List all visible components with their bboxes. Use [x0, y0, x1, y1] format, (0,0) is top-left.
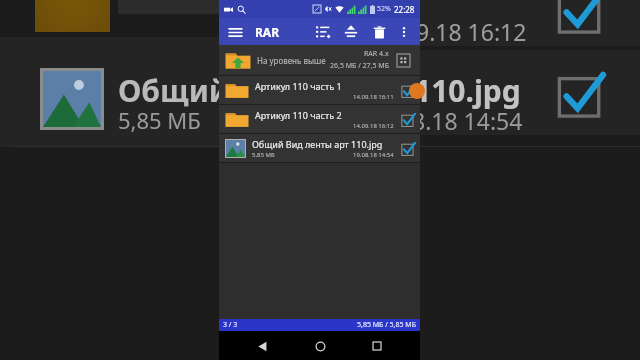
- staticText: 8.18 14:54: [412, 105, 523, 136]
- staticText: 110.jpg: [414, 70, 521, 111]
- button[interactable]: Home: [306, 332, 334, 360]
- button[interactable]: Артикул 110 часть 1: [219, 76, 420, 104]
- staticText: RAR 4.x: [364, 49, 389, 59]
- button[interactable]: Общий Вид ленты арт 110.jpg: [219, 134, 420, 162]
- staticText: 5,85 МБ / 5,85 МБ: [357, 320, 416, 330]
- staticText: Артикул 110 часть 2: [255, 109, 394, 121]
- staticText: На уровень выше: [257, 55, 326, 66]
- staticText: RAR: [255, 24, 280, 40]
- staticText: 14.09.18 16:11: [353, 93, 394, 101]
- staticText: 5,85 МБ: [252, 151, 275, 159]
- button[interactable]: На уровень выше: [219, 45, 420, 75]
- button[interactable]: Артикул 110 часть 2: [219, 105, 420, 133]
- staticText: 22:28: [394, 4, 415, 15]
- staticText: Артикул 110 часть 1: [255, 80, 394, 92]
- button[interactable]: Selected: [399, 82, 416, 99]
- button[interactable]: Select all: [312, 21, 334, 43]
- button[interactable]: Delete: [368, 21, 390, 43]
- staticText: 5,85 МБ: [118, 105, 201, 135]
- staticText: Общий: [118, 70, 230, 111]
- button[interactable]: Change view: [396, 53, 411, 68]
- staticText: 3 / 3: [223, 320, 238, 330]
- staticText: 19.08.18 14:54: [353, 151, 394, 159]
- staticText: Общий Вид ленты арт 110.jpg: [252, 138, 394, 150]
- button[interactable]: Recent apps: [363, 332, 391, 360]
- staticText: 9.18 16:12: [416, 16, 527, 47]
- button[interactable]: More options: [394, 22, 414, 42]
- staticText: 14.09.18 16:12: [353, 122, 394, 130]
- button[interactable]: Selected: [399, 140, 416, 157]
- button[interactable]: Extract: [340, 21, 362, 43]
- staticText: 52%: [377, 4, 391, 14]
- button[interactable]: Back: [248, 332, 276, 360]
- button[interactable]: Menu: [225, 22, 245, 42]
- staticText: 26,5 МБ / 27,5 МБ: [330, 61, 389, 71]
- button[interactable]: Selected: [399, 111, 416, 128]
